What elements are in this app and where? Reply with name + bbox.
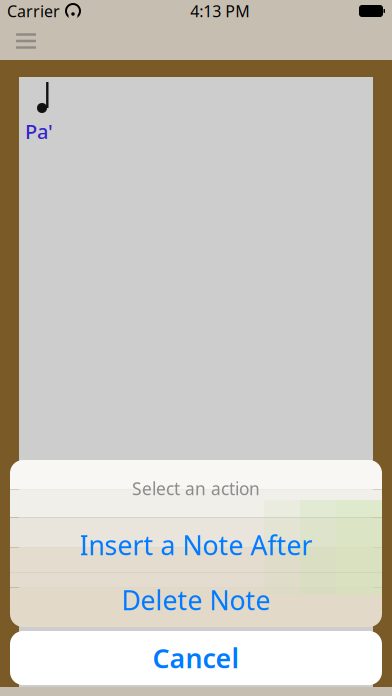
- staticText: Delete Note: [121, 582, 270, 618]
- button[interactable]: Insert a Note After: [10, 517, 382, 572]
- staticText: Carrier: [7, 0, 60, 22]
- staticText: Select an action: [132, 477, 260, 500]
- staticText: Cancel: [152, 640, 239, 676]
- staticText: 4:13 PM: [190, 0, 250, 22]
- button[interactable]: Menu: [4, 22, 48, 60]
- staticText: Pa': [25, 118, 53, 145]
- button[interactable]: Delete Note: [10, 573, 382, 627]
- staticText: Insert a Note After: [79, 527, 312, 563]
- button[interactable]: Cancel: [10, 631, 382, 685]
